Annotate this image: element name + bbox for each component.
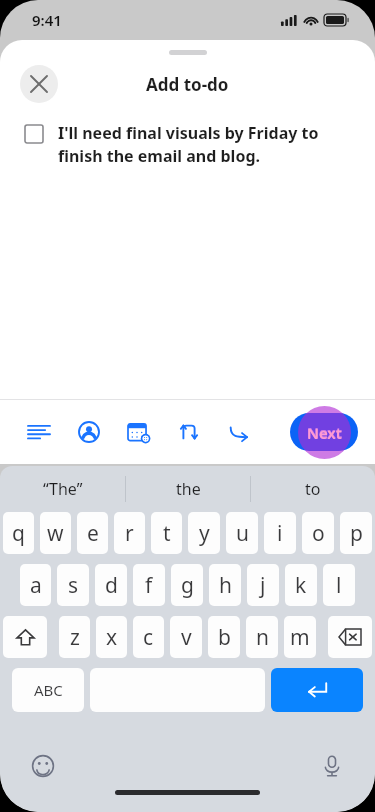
- staticText: w: [47, 519, 64, 548]
- button[interactable]: Description: [26, 419, 52, 445]
- staticText: s: [68, 571, 79, 600]
- staticText: Add to-do: [146, 73, 229, 96]
- staticText: f: [145, 571, 153, 600]
- button[interactable]: f: [133, 564, 165, 606]
- button[interactable]: Due date: [126, 419, 152, 445]
- staticText: m: [290, 623, 310, 652]
- staticText: x: [106, 623, 118, 652]
- button[interactable]: Close: [20, 65, 58, 103]
- button[interactable]: d: [95, 564, 127, 606]
- button[interactable]: l: [323, 564, 355, 606]
- button[interactable]: “The”: [0, 466, 125, 512]
- button[interactable]: k: [285, 564, 317, 606]
- staticText: i: [277, 519, 283, 548]
- button[interactable]: i: [264, 512, 296, 554]
- button[interactable]: to: [251, 466, 375, 512]
- button[interactable]: Emoji: [28, 751, 58, 781]
- staticText: p: [350, 519, 363, 548]
- staticText: the: [176, 478, 201, 500]
- staticText: q: [12, 519, 25, 548]
- staticText: u: [236, 519, 249, 548]
- staticText: t: [163, 519, 171, 548]
- button[interactable]: a: [20, 564, 51, 606]
- button[interactable]: Move: [226, 419, 252, 445]
- staticText: e: [87, 519, 99, 548]
- staticText: z: [70, 623, 80, 652]
- staticText: I'll need final visuals by Friday to fin…: [58, 122, 353, 167]
- button[interactable]: r: [114, 512, 145, 554]
- button[interactable]: x: [96, 616, 127, 658]
- staticText: Next: [307, 422, 342, 442]
- button[interactable]: u: [226, 512, 258, 554]
- button[interactable]: Backspace: [328, 616, 372, 658]
- button[interactable]: w: [40, 512, 71, 554]
- staticText: h: [219, 571, 232, 600]
- staticText: k: [295, 571, 307, 600]
- button[interactable]: b: [208, 616, 240, 658]
- button[interactable]: h: [209, 564, 241, 606]
- button[interactable]: the: [126, 466, 250, 512]
- staticText: v: [181, 623, 192, 652]
- staticText: “The”: [43, 478, 83, 500]
- staticText: o: [312, 519, 325, 548]
- button[interactable]: y: [188, 512, 220, 554]
- button[interactable]: e: [77, 512, 108, 554]
- staticText: j: [260, 571, 266, 600]
- button[interactable]: z: [59, 616, 90, 658]
- staticText: c: [143, 623, 154, 652]
- button[interactable]: j: [247, 564, 279, 606]
- staticText: ABC: [34, 680, 63, 700]
- staticText: r: [125, 519, 134, 548]
- staticText: b: [218, 623, 231, 652]
- staticText: g: [181, 571, 194, 600]
- staticText: n: [256, 623, 269, 652]
- button[interactable]: Shift: [3, 616, 47, 658]
- button[interactable]: ABC: [12, 668, 84, 712]
- button[interactable]: c: [133, 616, 164, 658]
- button[interactable]: Assignee: [76, 419, 102, 445]
- button[interactable]: o: [302, 512, 334, 554]
- staticText: to: [305, 478, 321, 500]
- button[interactable]: t: [151, 512, 182, 554]
- staticText: d: [105, 571, 118, 600]
- staticText: y: [199, 519, 210, 548]
- button[interactable]: v: [170, 616, 202, 658]
- button[interactable]: g: [171, 564, 203, 606]
- staticText: 9:41: [32, 10, 62, 30]
- button[interactable]: Return: [271, 668, 363, 712]
- button[interactable]: Repeat: [176, 419, 202, 445]
- button[interactable]: s: [57, 564, 89, 606]
- button[interactable]: Dictation: [317, 751, 347, 781]
- button[interactable]: m: [284, 616, 316, 658]
- staticText: Next: [307, 423, 342, 443]
- button[interactable]: q: [3, 512, 34, 554]
- staticText: l: [336, 571, 342, 600]
- button[interactable]: n: [246, 616, 278, 658]
- button[interactable]: Next: [290, 413, 358, 451]
- staticText: a: [30, 571, 42, 600]
- button[interactable]: p: [340, 512, 372, 554]
